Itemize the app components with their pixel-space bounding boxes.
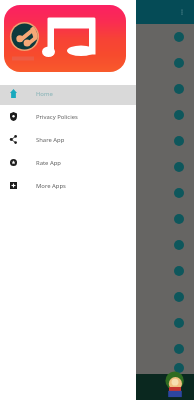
button[interactable]: Share App [0,128,136,151]
staticText: Home [36,90,53,98]
button[interactable] [0,76,194,102]
button[interactable] [0,206,194,232]
staticText: More Apps [36,182,66,190]
button[interactable] [0,336,194,362]
button[interactable] [0,24,194,50]
staticText: Privacy Policies [36,113,78,121]
button[interactable] [0,374,194,400]
button[interactable] [0,154,194,180]
button[interactable] [0,284,194,310]
button[interactable]: Home [0,82,136,105]
button[interactable] [0,258,194,284]
button[interactable] [0,50,194,76]
button[interactable] [0,310,194,336]
button[interactable] [0,362,194,374]
staticText: Rate App [36,159,61,167]
staticText: Share App [36,136,65,144]
button[interactable]: More Apps [0,174,136,197]
button[interactable] [0,128,194,154]
button[interactable] [0,102,194,128]
button[interactable]: Privacy Policies [0,105,136,128]
button[interactable]: Rate App [0,151,136,174]
button[interactable] [0,232,194,258]
button[interactable] [0,180,194,206]
button[interactable]: More options [175,5,189,19]
